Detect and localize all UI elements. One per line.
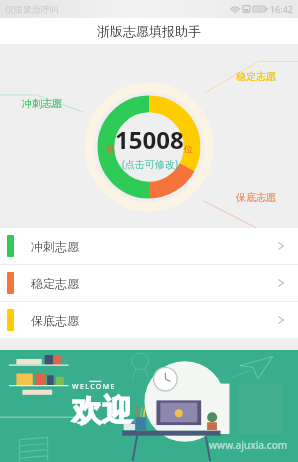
staticText: 保底志愿 xyxy=(236,191,276,204)
staticText: 16:42 xyxy=(270,3,294,15)
button[interactable]: 冲刺志愿 xyxy=(0,228,298,264)
button[interactable]: 欢迎 banner xyxy=(0,350,298,462)
staticText: www.ajuxia.com xyxy=(209,438,288,452)
staticText: WELCOME xyxy=(72,382,116,392)
staticText: 稳定志愿 xyxy=(236,70,276,83)
staticText: 稳定志愿 xyxy=(31,276,79,291)
staticText: 冲刺志愿 xyxy=(31,239,79,254)
staticText: 第 xyxy=(106,143,115,154)
staticText: 仅限紧急呼叫 xyxy=(5,4,59,15)
button[interactable]: 稳定志愿 xyxy=(0,265,298,301)
button[interactable]: 第 xyxy=(87,85,211,209)
staticText: (点击可修改) xyxy=(122,157,178,171)
staticText: 冲刺志愿 xyxy=(22,97,62,110)
staticText: 浙版志愿填报助手 xyxy=(97,23,201,39)
staticText: 位 xyxy=(184,143,193,154)
button[interactable]: 保底志愿 xyxy=(0,302,298,338)
staticText: 保底志愿 xyxy=(31,313,79,328)
staticText: 欢迎 xyxy=(72,392,132,430)
staticText: 15008 xyxy=(115,123,184,156)
